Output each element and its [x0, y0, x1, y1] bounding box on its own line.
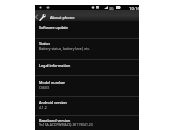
staticText: Baseband version [39, 118, 71, 123]
staticText: 4.1.2 [39, 105, 47, 110]
staticText: Status [39, 41, 50, 46]
button[interactable] [35, 60, 139, 76]
button[interactable] [35, 39, 139, 61]
staticText: About phone [50, 15, 75, 20]
staticText: Legal information [39, 63, 71, 68]
button[interactable] [35, 97, 139, 116]
other: Navigate up [35, 15, 38, 19]
button[interactable] [35, 116, 139, 130]
button[interactable] [35, 76, 139, 97]
staticText: 3G [109, 6, 114, 11]
staticText: 9x15A-ACDFWMAZQ-30119041.23 [39, 122, 93, 127]
staticText: 10:16 [129, 5, 140, 10]
button[interactable] [35, 25, 139, 39]
staticText: Software update [39, 25, 69, 30]
button[interactable]: Navigate up [35, 10, 139, 21]
staticText: Model number [39, 80, 66, 85]
staticText: Android version [39, 100, 67, 105]
staticText: Battery status, battery level, etc. [39, 46, 91, 51]
staticText: C6603 [39, 85, 49, 90]
